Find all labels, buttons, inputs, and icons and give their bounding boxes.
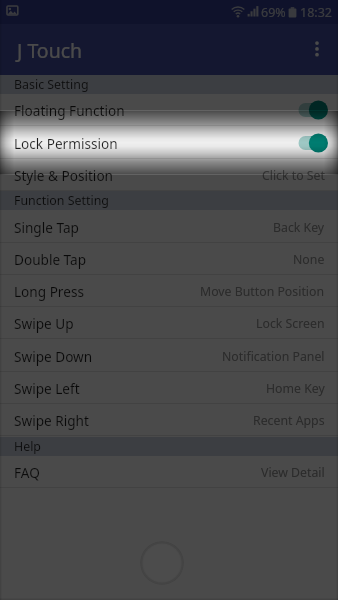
- button[interactable]: Single Tap: [0, 211, 338, 243]
- staticText: Back Key: [273, 219, 325, 236]
- button[interactable]: Style & Position: [0, 159, 338, 191]
- button[interactable]: Swipe Up: [0, 307, 338, 339]
- staticText: Basic Setting: [14, 76, 89, 93]
- staticText: Floating Function: [14, 101, 125, 120]
- staticText: Long Press: [14, 282, 84, 301]
- staticText: Style & Position: [14, 166, 114, 185]
- staticText: Notification Panel: [222, 348, 325, 365]
- button[interactable]: Floating Function: [0, 94, 338, 126]
- staticText: Click to Set: [262, 167, 325, 184]
- staticText: Move Button Position: [200, 283, 325, 300]
- button[interactable]: Swipe Right: [0, 404, 338, 436]
- staticText: None: [293, 251, 325, 268]
- staticText: Swipe Left: [14, 379, 80, 398]
- button[interactable]: More options: [296, 24, 338, 75]
- staticText: Function Setting: [14, 192, 109, 209]
- staticText: FAQ: [14, 463, 40, 482]
- staticText: Swipe Right: [14, 411, 89, 430]
- staticText: Lock Permission: [14, 134, 118, 153]
- staticText: J Touch: [17, 37, 83, 64]
- staticText: Help: [14, 438, 41, 455]
- button[interactable]: Long Press: [0, 275, 338, 307]
- button[interactable]: Swipe Left: [0, 372, 338, 404]
- button[interactable]: Double Tap: [0, 243, 338, 275]
- button[interactable]: Lock Permission: [0, 127, 338, 159]
- staticText: Single Tap: [14, 218, 79, 237]
- button[interactable]: FAQ: [0, 456, 338, 488]
- staticText: Double Tap: [14, 250, 87, 269]
- staticText: Home Key: [266, 380, 325, 397]
- button[interactable]: Swipe Down: [0, 340, 338, 372]
- staticText: Lock Screen: [256, 315, 325, 332]
- staticText: Recent Apps: [253, 412, 325, 429]
- staticText: Swipe Down: [14, 347, 93, 366]
- staticText: 18:32: [300, 4, 332, 21]
- staticText: View Detail: [261, 464, 325, 481]
- staticText: 69%: [261, 4, 286, 21]
- staticText: Swipe Up: [14, 314, 74, 333]
